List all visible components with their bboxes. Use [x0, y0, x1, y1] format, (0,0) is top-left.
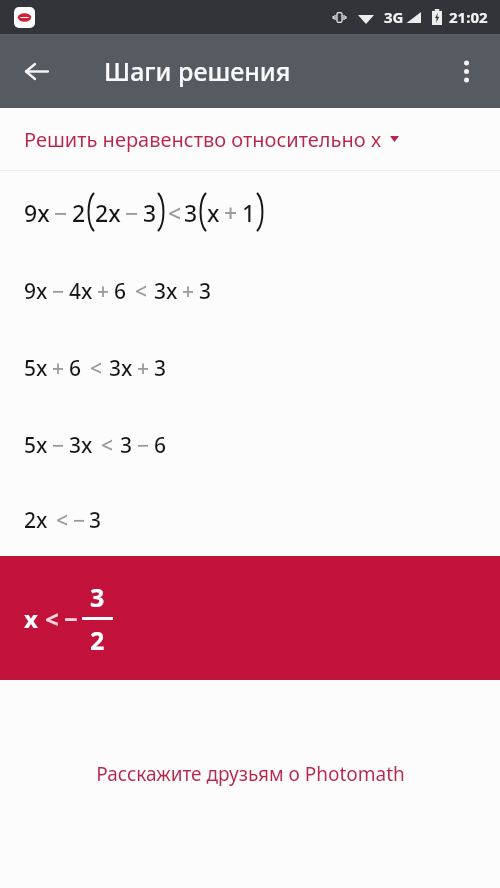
staticText: 2	[90, 623, 105, 657]
button[interactable]: Back	[10, 45, 62, 97]
staticText: <	[168, 197, 182, 228]
staticText: 2	[72, 197, 86, 228]
button[interactable]: More options	[440, 45, 492, 97]
staticText: 3	[154, 354, 167, 383]
staticText: <	[45, 602, 59, 635]
staticText: 2x	[95, 197, 121, 228]
staticText: 3	[89, 506, 102, 535]
staticText: 3	[120, 431, 133, 460]
staticText: Решить неравенство относительно x	[24, 126, 382, 153]
staticText: x	[207, 197, 220, 228]
staticText: −	[52, 277, 65, 306]
staticText: −	[64, 602, 78, 635]
staticText: −	[52, 431, 65, 460]
button[interactable]: Решить неравенство относительно x	[0, 108, 500, 170]
staticText: x	[24, 602, 38, 635]
staticText: 3	[184, 197, 198, 228]
staticText: +	[137, 354, 150, 383]
staticText: −	[125, 197, 139, 228]
staticText: 3x	[69, 431, 93, 460]
staticText: 21:02	[449, 7, 488, 27]
staticText: 3	[199, 277, 212, 306]
staticText: 5x	[24, 431, 48, 460]
staticText: Шаги решения	[104, 54, 291, 88]
staticText: −	[54, 197, 68, 228]
staticText: 6	[154, 431, 167, 460]
staticText: <	[56, 506, 69, 535]
staticText: +	[52, 354, 65, 383]
staticText: 5x	[24, 354, 48, 383]
staticText: 3	[90, 580, 105, 614]
staticText: 6	[114, 277, 127, 306]
staticText: 1	[242, 197, 256, 228]
staticText: 9x	[24, 197, 50, 228]
staticText: −	[137, 431, 150, 460]
staticText: <	[101, 431, 114, 460]
staticText: <	[135, 277, 148, 306]
staticText: 3x	[154, 277, 178, 306]
staticText: 4x	[69, 277, 93, 306]
staticText: +	[182, 277, 195, 306]
staticText: −	[73, 506, 86, 535]
staticText: 9x	[24, 277, 48, 306]
button[interactable]: x	[0, 556, 500, 680]
staticText: <	[90, 354, 103, 383]
staticText: 3x	[109, 354, 133, 383]
staticText: 6	[69, 354, 82, 383]
staticText: 3G	[384, 7, 404, 27]
staticText: 3	[143, 197, 157, 228]
staticText: +	[97, 277, 110, 306]
staticText: 2x	[24, 506, 48, 535]
staticText: Расскажите друзьям о Photomath	[96, 761, 405, 787]
button[interactable]: Расскажите друзьям о Photomath	[84, 753, 417, 795]
staticText: +	[224, 197, 238, 228]
